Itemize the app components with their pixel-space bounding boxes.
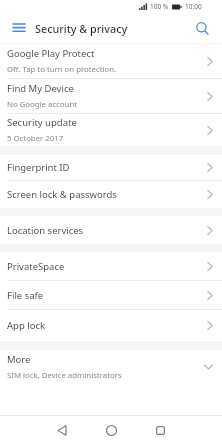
staticText: Fingerprint ID <box>7 161 70 174</box>
button[interactable] <box>10 19 28 37</box>
button[interactable]: Find My Device <box>0 79 222 113</box>
staticText: 5 October 2017 <box>7 133 64 144</box>
staticText: File safe <box>7 289 44 302</box>
staticText: Find My Device <box>7 82 74 95</box>
button[interactable]: Google Play Protect <box>0 44 222 78</box>
staticText: PrivateSpace <box>7 260 65 273</box>
button[interactable] <box>194 20 210 36</box>
staticText: 100 % <box>150 2 169 11</box>
staticText: Security update <box>7 116 77 129</box>
button[interactable] <box>141 416 179 444</box>
button[interactable]: Location services <box>0 216 222 244</box>
button[interactable]: App lock <box>0 310 222 341</box>
button[interactable]: Fingerprint ID <box>0 155 222 180</box>
button[interactable] <box>43 416 81 444</box>
staticText: Security & privacy <box>35 21 128 36</box>
staticText: Google Play Protect <box>7 47 95 60</box>
staticText: More <box>7 353 31 366</box>
staticText: App lock <box>7 319 46 332</box>
staticText: No Google account <box>7 99 78 110</box>
button[interactable]: More <box>0 350 222 384</box>
button[interactable]: Security update <box>0 114 222 146</box>
staticText: SIM lock, Device administrators <box>7 370 122 381</box>
staticText: Off. Tap to turn on protection. <box>7 64 117 75</box>
button[interactable]: Screen lock & passwords <box>0 181 222 208</box>
staticText: Location services <box>7 224 84 237</box>
staticText: 10:00 <box>185 2 202 11</box>
button[interactable]: PrivateSpace <box>0 252 222 280</box>
button[interactable] <box>92 416 130 444</box>
button[interactable]: File safe <box>0 281 222 309</box>
staticText: Screen lock & passwords <box>7 188 117 201</box>
